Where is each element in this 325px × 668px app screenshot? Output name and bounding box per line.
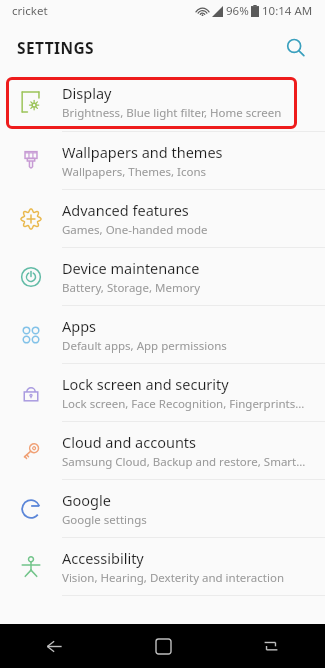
button[interactable]: Cloud and accounts bbox=[0, 422, 325, 479]
staticText: Samsung Cloud, Backup and restore, Smart… bbox=[62, 454, 306, 470]
staticText: Brightness, Blue light filter, Home scre… bbox=[62, 105, 282, 121]
staticText: Cloud and accounts bbox=[62, 432, 197, 452]
staticText: Google bbox=[62, 490, 111, 510]
staticText: Default apps, App permissions bbox=[62, 338, 227, 354]
staticText: 10:14 AM bbox=[262, 3, 313, 19]
staticText: 96% bbox=[226, 3, 249, 19]
staticText: Lock screen and security bbox=[62, 374, 229, 394]
staticText: Games, One-handed mode bbox=[62, 222, 208, 238]
staticText: SETTINGS bbox=[17, 37, 95, 58]
button[interactable]: Advanced features bbox=[0, 190, 325, 247]
staticText: Battery, Storage, Memory bbox=[62, 280, 201, 296]
button[interactable]: Google bbox=[0, 480, 325, 537]
staticText: Wallpapers and themes bbox=[62, 142, 223, 162]
button[interactable]: Lock screen and security bbox=[0, 364, 325, 421]
button[interactable]: Apps bbox=[0, 306, 325, 363]
button[interactable]: Wallpapers and themes bbox=[0, 132, 325, 189]
staticText: Google settings bbox=[62, 512, 147, 528]
staticText: Display bbox=[62, 83, 112, 103]
staticText: cricket bbox=[12, 3, 48, 19]
button[interactable]: Search bbox=[275, 27, 315, 67]
button[interactable]: Home bbox=[109, 624, 217, 668]
button[interactable]: Recents bbox=[217, 624, 325, 668]
button[interactable]: Accessibility bbox=[0, 538, 325, 595]
staticText: Apps bbox=[62, 316, 97, 336]
staticText: Advanced features bbox=[62, 200, 189, 220]
staticText: Wallpapers, Themes, Icons bbox=[62, 164, 207, 180]
staticText: Vision, Hearing, Dexterity and interacti… bbox=[62, 570, 285, 586]
button[interactable]: Device maintenance bbox=[0, 248, 325, 305]
staticText: Lock screen, Face Recognition, Fingerpri… bbox=[62, 396, 305, 412]
staticText: Accessibility bbox=[62, 548, 144, 568]
staticText: Device maintenance bbox=[62, 258, 200, 278]
button[interactable]: Back bbox=[0, 624, 109, 668]
button[interactable]: Display bbox=[0, 73, 325, 130]
